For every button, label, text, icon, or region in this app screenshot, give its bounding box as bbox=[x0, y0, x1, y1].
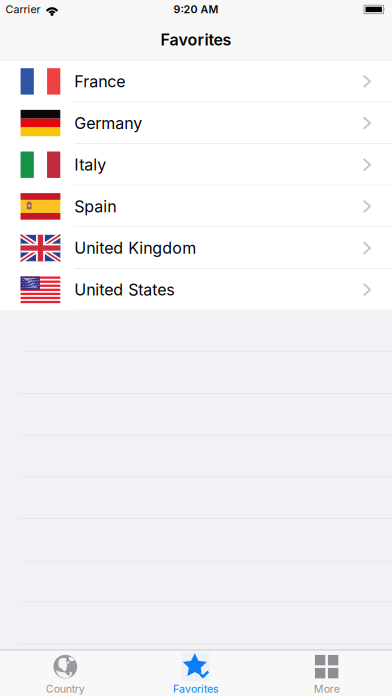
staticText: Italy bbox=[74, 155, 106, 174]
staticText: Spain bbox=[74, 197, 116, 216]
button[interactable]: More bbox=[261, 650, 392, 696]
staticText: 9:20 AM bbox=[173, 3, 218, 16]
staticText: Germany bbox=[74, 114, 142, 132]
button[interactable]: United States bbox=[0, 269, 392, 311]
staticText: Favorites bbox=[173, 682, 219, 695]
staticText: United Kingdom bbox=[74, 239, 196, 257]
staticText: France bbox=[74, 72, 125, 91]
staticText: Country bbox=[46, 682, 85, 695]
staticText: Carrier bbox=[5, 3, 40, 16]
staticText: Favorites bbox=[160, 30, 231, 49]
button[interactable]: Italy bbox=[0, 144, 392, 186]
button[interactable]: France bbox=[0, 61, 392, 102]
button[interactable]: United Kingdom bbox=[0, 227, 392, 269]
button[interactable]: Spain bbox=[0, 186, 392, 227]
staticText: More bbox=[314, 682, 340, 695]
button[interactable]: Germany bbox=[0, 102, 392, 144]
staticText: United States bbox=[74, 280, 174, 299]
button[interactable]: Favorites bbox=[131, 650, 261, 696]
button[interactable]: Country bbox=[0, 650, 131, 696]
